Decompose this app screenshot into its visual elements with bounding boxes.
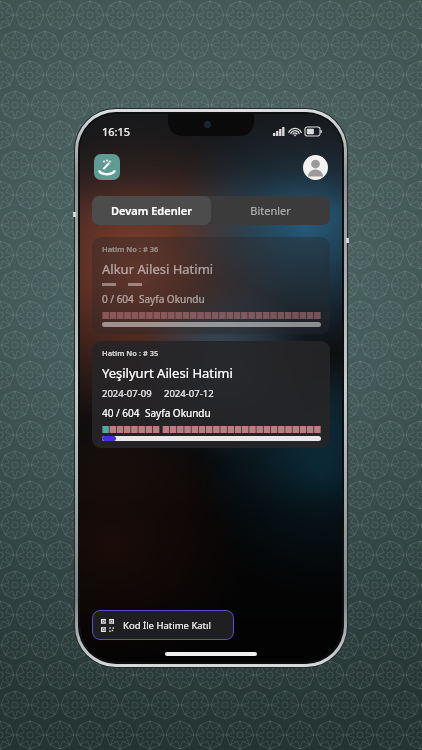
button[interactable]: Kod İle Hatime Katıl (92, 610, 234, 640)
button[interactable]: Bitenler (211, 196, 330, 225)
button[interactable]: Profile (303, 155, 328, 180)
staticText: 40 / 604 (102, 406, 140, 420)
button[interactable]: Hatim No : # 35 (92, 341, 330, 448)
staticText: Sayfa Okundu (139, 292, 205, 306)
staticText: Kod İle Hatime Katıl (123, 619, 211, 632)
staticText: Sayfa Okundu (145, 406, 211, 420)
staticText: 2024-07-12 (164, 387, 214, 400)
staticText: Yeşilyurt Ailesi Hatimi (102, 364, 233, 382)
staticText: Hatim No : # 35 (102, 348, 159, 358)
staticText: 16:15 (102, 124, 131, 139)
staticText: 2024-07-09 (102, 387, 152, 400)
staticText: Bitenler (250, 203, 291, 218)
button[interactable]: Devam Edenler (92, 196, 211, 225)
button[interactable]: Hatim app logo (94, 154, 120, 180)
button[interactable]: Hatim No : # 36 (92, 237, 330, 334)
staticText: Devam Edenler (111, 203, 192, 218)
staticText: 0 / 604 (102, 292, 134, 306)
staticText: Alkur Ailesi Hatimi (102, 260, 214, 278)
staticText: Hatim No : # 36 (102, 244, 159, 254)
